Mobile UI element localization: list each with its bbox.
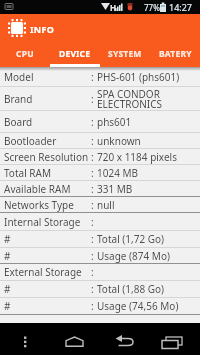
- staticText: #: [4, 249, 11, 263]
- staticText: Total (1,72 Go): [97, 232, 165, 246]
- staticText: 77%: [144, 2, 160, 13]
- staticText: :: [91, 166, 94, 180]
- button[interactable]: #: [0, 298, 200, 315]
- staticText: :: [91, 215, 94, 229]
- button[interactable]: External Storage: [0, 264, 200, 281]
- staticText: #: [4, 232, 11, 246]
- staticText: Available RAM: [4, 182, 71, 196]
- staticText: INFO: [30, 23, 55, 35]
- button[interactable]: [62, 323, 87, 355]
- staticText: Bootloader: [4, 134, 57, 148]
- staticText: Board: [4, 115, 33, 129]
- staticText: :: [91, 232, 94, 246]
- staticText: 1024 MB: [97, 166, 139, 180]
- staticText: Internal Storage: [4, 215, 81, 229]
- staticText: PHS-601 (phs601): [97, 70, 180, 84]
- staticText: unknown: [97, 134, 141, 148]
- staticText: Total RAM: [4, 166, 51, 180]
- staticText: :: [91, 282, 94, 296]
- button[interactable]: Model: [0, 67, 200, 87]
- button[interactable]: Available RAM: [0, 181, 200, 197]
- button[interactable]: Board: [0, 111, 200, 133]
- staticText: :: [91, 265, 94, 279]
- staticText: :: [91, 249, 94, 263]
- button[interactable]: [112, 323, 137, 355]
- staticText: :: [91, 150, 94, 164]
- button[interactable]: CPU: [0, 44, 50, 64]
- button[interactable]: Networks Type: [0, 197, 200, 213]
- staticText: Screen Resolution: [4, 150, 88, 164]
- button[interactable]: Brand: [0, 87, 200, 111]
- staticText: Networks Type: [4, 198, 74, 212]
- staticText: Total (1,88 Go): [97, 282, 165, 296]
- button[interactable]: #: [0, 231, 200, 248]
- button[interactable]: BATERY: [150, 44, 200, 64]
- staticText: null: [97, 198, 115, 212]
- staticText: 14:27: [169, 1, 193, 13]
- staticText: :: [91, 92, 94, 106]
- staticText: H: [110, 2, 117, 13]
- button[interactable]: #: [0, 248, 200, 264]
- staticText: :: [91, 182, 94, 196]
- staticText: SYSTEM: [108, 48, 142, 60]
- staticText: Model: [4, 70, 34, 84]
- staticText: SPA CONDOR ELECTRONICS: [97, 87, 163, 110]
- staticText: :: [91, 299, 94, 313]
- staticText: #: [4, 299, 11, 313]
- button[interactable]: Total RAM: [0, 165, 200, 181]
- staticText: Usage (874 Mo): [97, 249, 170, 263]
- staticText: 720 x 1184 pixels: [97, 150, 177, 164]
- staticText: phs601: [97, 115, 132, 129]
- staticText: :: [91, 70, 94, 84]
- button[interactable]: Internal Storage: [0, 213, 200, 231]
- staticText: CPU: [16, 48, 34, 60]
- button[interactable]: [159, 323, 184, 355]
- staticText: :: [91, 134, 94, 148]
- staticText: External Storage: [4, 265, 82, 279]
- staticText: Brand: [4, 92, 33, 106]
- staticText: Usage (74,56 Mo): [97, 299, 179, 313]
- staticText: :: [91, 115, 94, 129]
- staticText: #: [4, 282, 11, 296]
- button[interactable]: [13, 323, 37, 355]
- button[interactable]: Bootloader: [0, 133, 200, 149]
- button[interactable]: #: [0, 281, 200, 298]
- staticText: BATERY: [159, 48, 192, 60]
- staticText: :: [91, 198, 94, 212]
- button[interactable]: SYSTEM: [100, 44, 150, 64]
- staticText: 331 MB: [97, 182, 133, 196]
- button[interactable]: Screen Resolution: [0, 149, 200, 165]
- button[interactable]: DEVICE: [50, 44, 100, 64]
- staticText: DEVICE: [59, 48, 91, 60]
